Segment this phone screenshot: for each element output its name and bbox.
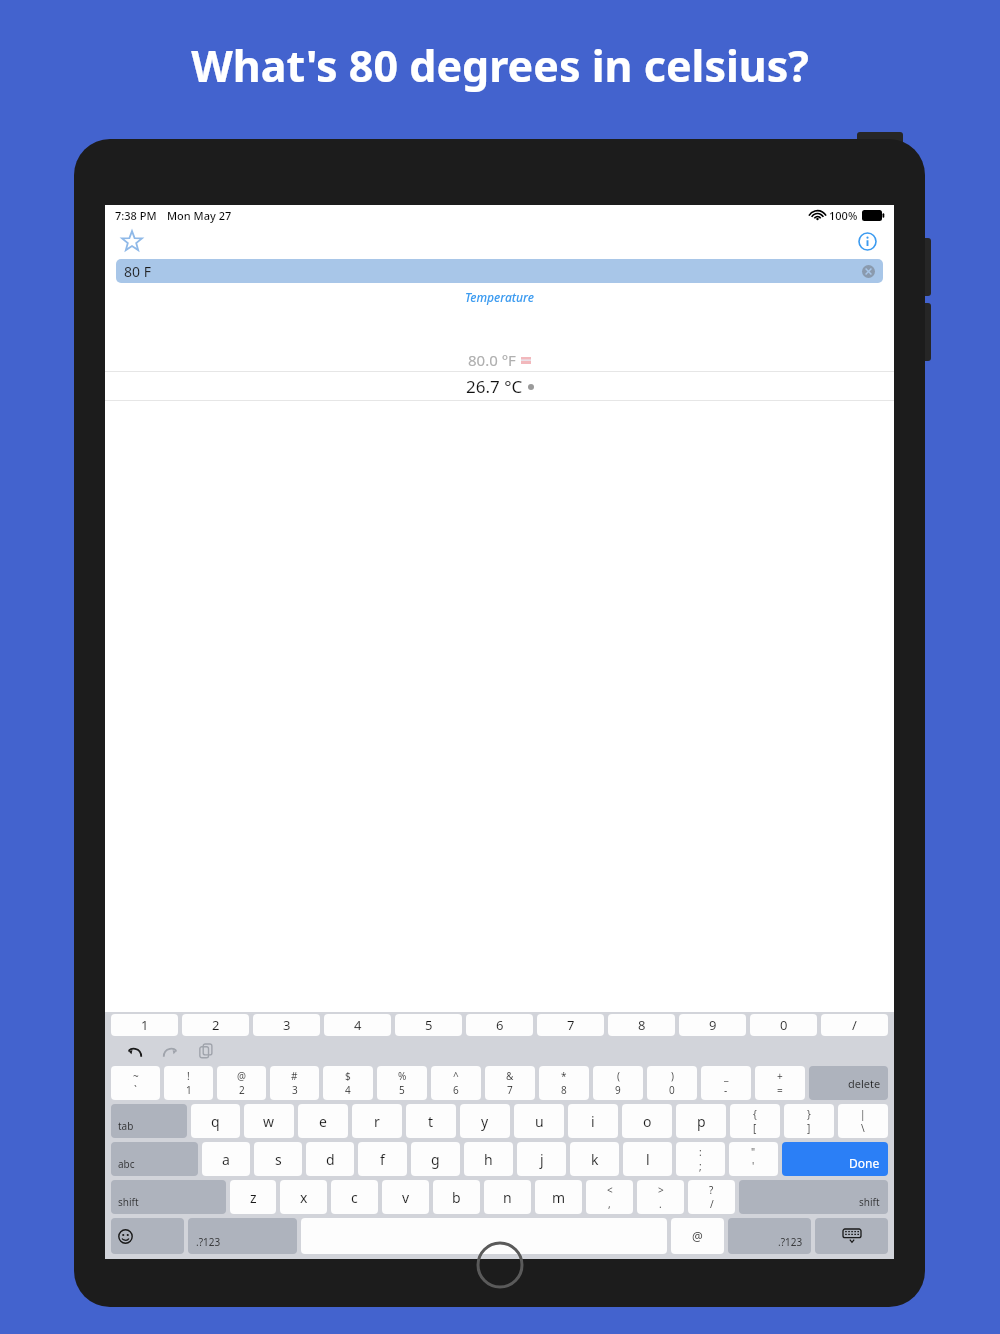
button[interactable]: # — [270, 1066, 319, 1100]
button[interactable]: tab — [111, 1104, 187, 1138]
button[interactable]: 5 — [395, 1014, 462, 1036]
button[interactable] — [301, 1218, 667, 1254]
button[interactable]: 8 — [608, 1014, 675, 1036]
button[interactable]: ~ — [111, 1066, 160, 1100]
button[interactable]: 9 — [679, 1014, 746, 1036]
staticText: 6 — [453, 1083, 459, 1097]
button[interactable]: > — [637, 1180, 684, 1214]
button[interactable]: Emoji — [111, 1218, 184, 1254]
button[interactable]: c — [331, 1180, 378, 1214]
button[interactable]: shift — [111, 1180, 226, 1214]
button[interactable]: 4 — [324, 1014, 391, 1036]
button[interactable]: abc — [111, 1142, 198, 1176]
button[interactable]: n — [484, 1180, 531, 1214]
button[interactable]: o — [622, 1104, 672, 1138]
button[interactable]: + — [755, 1066, 805, 1100]
button[interactable]: * — [539, 1066, 589, 1100]
staticText: ~ — [133, 1069, 139, 1083]
button[interactable]: 1 — [111, 1014, 178, 1036]
button[interactable]: 7 — [537, 1014, 604, 1036]
button[interactable]: 2 — [182, 1014, 249, 1036]
button[interactable]: delete — [809, 1066, 888, 1100]
button[interactable]: | — [838, 1104, 888, 1138]
button[interactable]: Info — [854, 228, 880, 254]
staticText: 4 — [354, 1016, 362, 1034]
button[interactable]: Undo — [123, 1040, 145, 1062]
button[interactable]: j — [517, 1142, 566, 1176]
button[interactable]: Redo — [159, 1040, 181, 1062]
button[interactable]: : — [676, 1142, 725, 1176]
button[interactable]: Hide keyboard — [815, 1218, 888, 1254]
staticText: ; — [699, 1159, 702, 1173]
button[interactable]: _ — [701, 1066, 751, 1100]
staticText: t — [428, 1112, 434, 1131]
button[interactable]: Paste — [195, 1040, 217, 1062]
staticText: \ — [861, 1121, 865, 1135]
staticText: } — [807, 1107, 811, 1121]
button[interactable]: t — [406, 1104, 456, 1138]
button[interactable]: w — [244, 1104, 294, 1138]
button[interactable]: ( — [593, 1066, 643, 1100]
button[interactable]: l — [623, 1142, 672, 1176]
button[interactable]: " — [729, 1142, 778, 1176]
staticText: What's 80 degrees in celsius? — [191, 36, 809, 95]
button[interactable]: ! — [164, 1066, 213, 1100]
button[interactable]: .?123 — [188, 1218, 297, 1254]
staticText: 0 — [780, 1016, 788, 1034]
button[interactable]: 80.0 °F — [105, 349, 894, 371]
button[interactable]: Clear text — [862, 265, 875, 278]
button[interactable]: m — [535, 1180, 582, 1214]
button[interactable]: v — [382, 1180, 429, 1214]
button[interactable]: } — [784, 1104, 834, 1138]
staticText: ? — [709, 1183, 714, 1197]
staticText: shift — [118, 1195, 139, 1209]
button[interactable]: & — [485, 1066, 535, 1100]
button[interactable]: Favorite — [119, 228, 145, 254]
button[interactable]: < — [586, 1180, 633, 1214]
button[interactable]: % — [377, 1066, 427, 1100]
button[interactable]: ^ — [431, 1066, 481, 1100]
button[interactable]: g — [411, 1142, 460, 1176]
button[interactable]: $ — [323, 1066, 373, 1100]
button[interactable]: 0 — [750, 1014, 817, 1036]
button[interactable]: p — [676, 1104, 726, 1138]
button[interactable]: a — [202, 1142, 250, 1176]
button[interactable]: i — [568, 1104, 618, 1138]
button[interactable]: @ — [217, 1066, 266, 1100]
staticText: _ — [724, 1069, 729, 1083]
button[interactable]: q — [191, 1104, 240, 1138]
button[interactable]: @ — [671, 1218, 724, 1254]
staticText: .?123 — [196, 1235, 221, 1249]
button[interactable]: h — [464, 1142, 513, 1176]
button[interactable]: { — [730, 1104, 780, 1138]
button[interactable]: 6 — [466, 1014, 533, 1036]
button[interactable]: u — [514, 1104, 564, 1138]
button[interactable]: d — [306, 1142, 354, 1176]
button[interactable]: e — [298, 1104, 348, 1138]
button[interactable]: x — [280, 1180, 327, 1214]
button[interactable]: r — [352, 1104, 402, 1138]
button[interactable]: / — [821, 1014, 888, 1036]
button[interactable]: ) — [647, 1066, 697, 1100]
button[interactable]: y — [460, 1104, 510, 1138]
button[interactable]: f — [358, 1142, 407, 1176]
button[interactable]: Done — [782, 1142, 888, 1176]
staticText: p — [697, 1112, 706, 1131]
button[interactable]: s — [254, 1142, 302, 1176]
button[interactable]: Home — [476, 1241, 524, 1289]
staticText: ' — [752, 1159, 755, 1173]
button[interactable]: 3 — [253, 1014, 320, 1036]
staticText: 8 — [561, 1083, 567, 1097]
staticText: q — [211, 1112, 220, 1131]
button[interactable]: 80 F — [116, 259, 883, 283]
staticText: [ — [753, 1121, 757, 1135]
button[interactable]: shift — [739, 1180, 888, 1214]
button[interactable]: b — [433, 1180, 480, 1214]
button[interactable]: k — [570, 1142, 619, 1176]
button[interactable]: 26.7 °C — [105, 372, 894, 400]
button[interactable]: ? — [688, 1180, 735, 1214]
staticText: y — [481, 1112, 489, 1131]
button[interactable]: z — [230, 1180, 276, 1214]
staticText: 7 — [567, 1016, 575, 1034]
button[interactable]: .?123 — [728, 1218, 811, 1254]
